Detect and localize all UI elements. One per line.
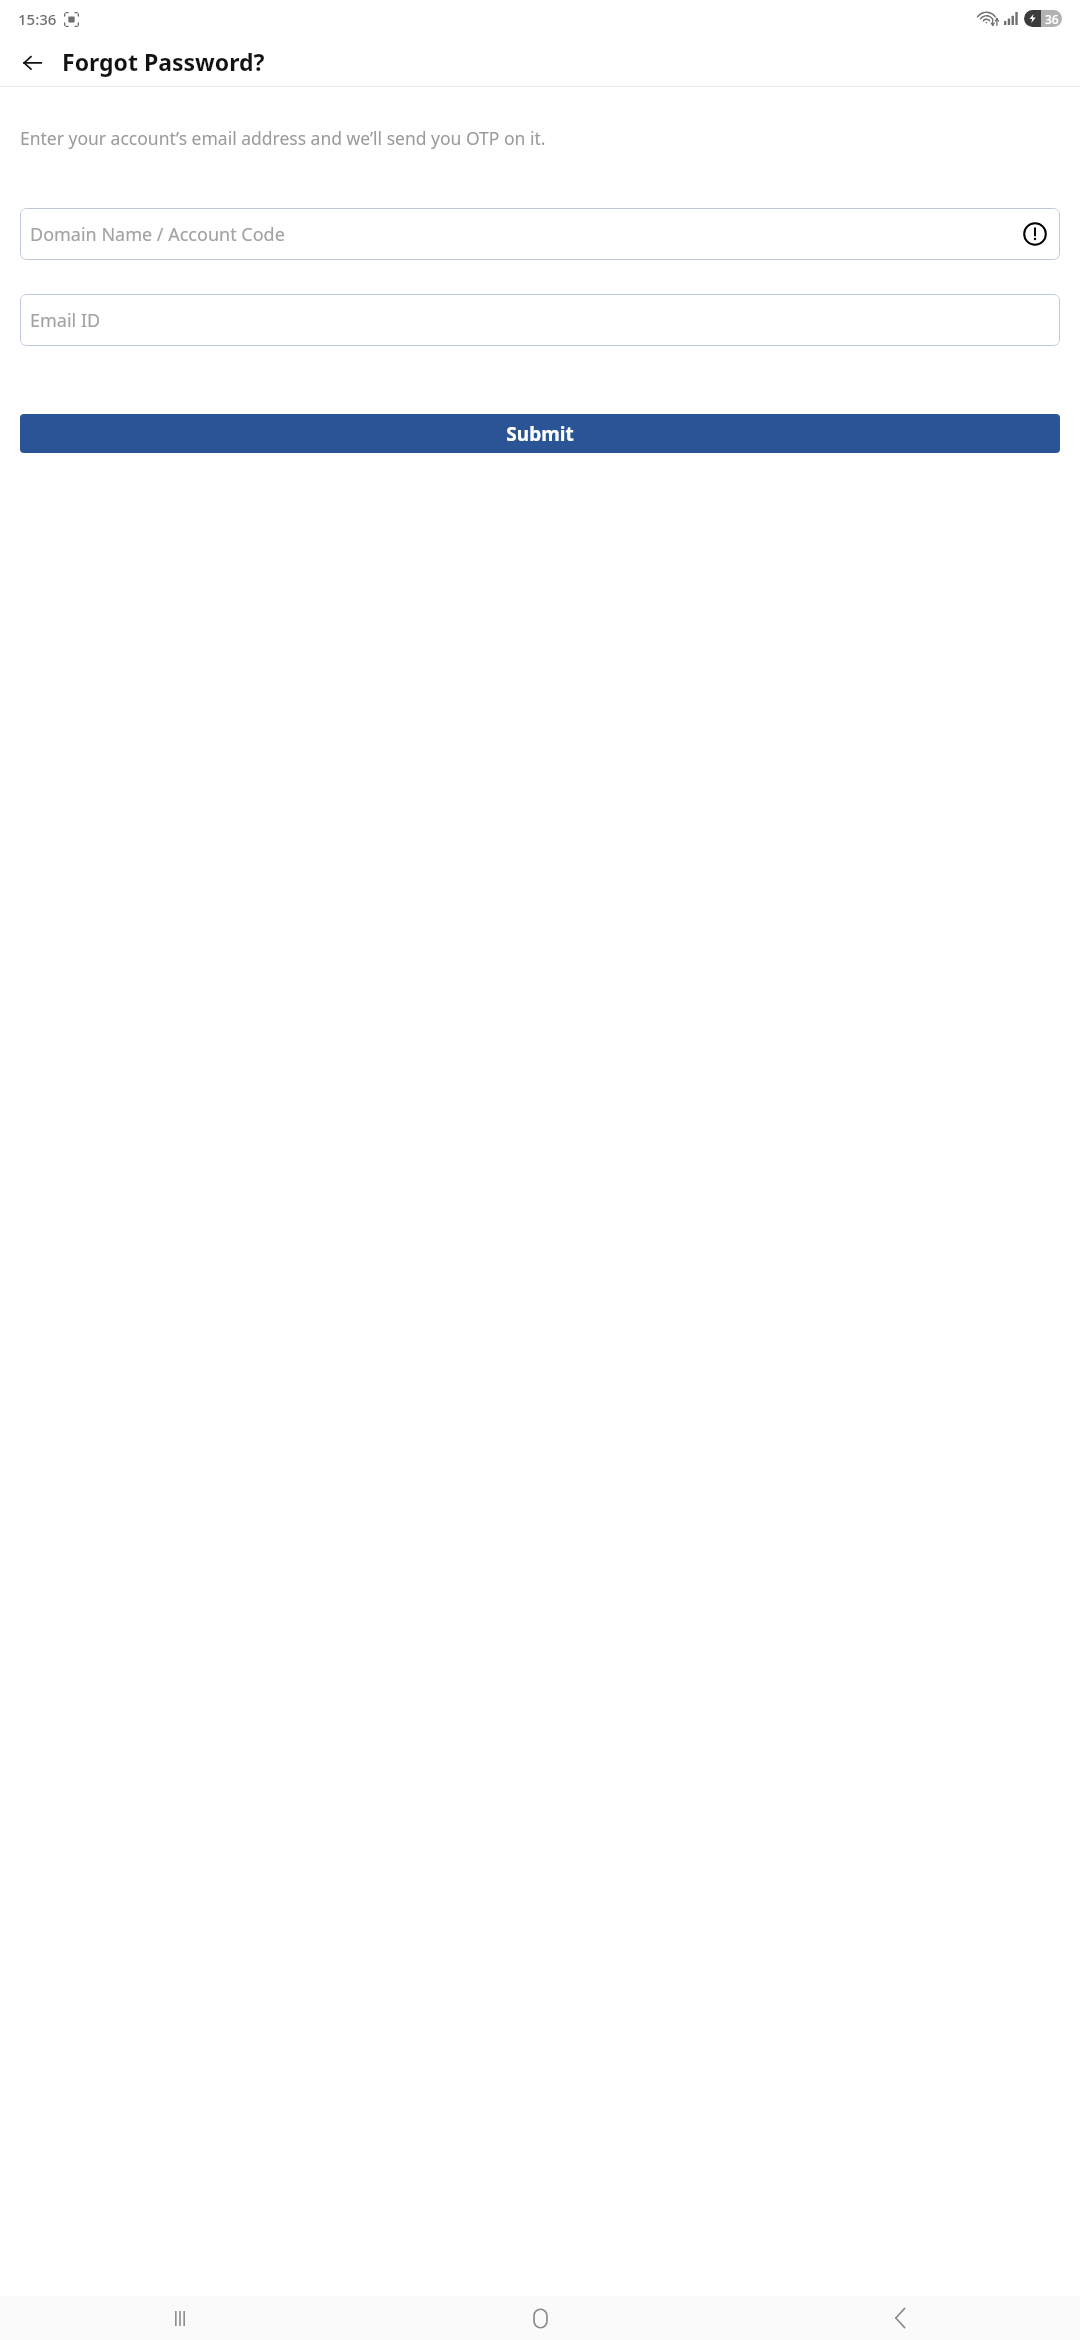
staticText: Enter your account’s email address and w…: [20, 126, 1060, 150]
button[interactable]: Submit: [20, 414, 1060, 453]
button[interactable]: Domain Name / Account Code: [20, 208, 1060, 260]
staticText: Domain Name / Account Code: [30, 222, 285, 247]
other: Error: [1022, 221, 1048, 247]
staticText: Forgot Password?: [62, 46, 265, 77]
button[interactable]: Email ID: [20, 294, 1060, 346]
staticText: 15:36: [18, 9, 57, 29]
button[interactable]: Back: [720, 2296, 1080, 2340]
button[interactable]: Recents: [0, 2296, 360, 2340]
staticText: Submit: [506, 421, 574, 447]
staticText: Email ID: [30, 308, 101, 333]
button[interactable]: Back: [14, 44, 50, 80]
button[interactable]: Home: [360, 2296, 720, 2340]
staticText: 36: [1045, 11, 1059, 27]
